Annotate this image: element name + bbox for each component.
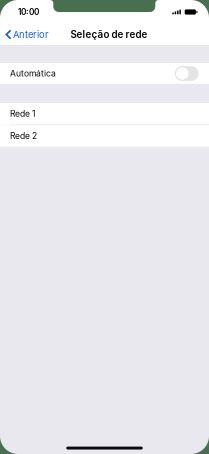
button[interactable]: Rede 1 <box>0 103 209 124</box>
staticText: Automática <box>10 68 56 79</box>
staticText: Rede 1 <box>10 109 35 119</box>
staticText: Seleção de rede <box>70 29 147 40</box>
navigationBar: Seleção de rede <box>0 24 209 45</box>
staticText: Rede 2 <box>10 131 37 141</box>
button[interactable]: Anterior <box>0 24 56 45</box>
staticText: Anterior <box>13 29 49 40</box>
staticText: 10:00 <box>18 7 39 17</box>
button[interactable]: Automática, desligado <box>0 63 209 84</box>
button[interactable]: Rede 2 <box>0 125 209 147</box>
